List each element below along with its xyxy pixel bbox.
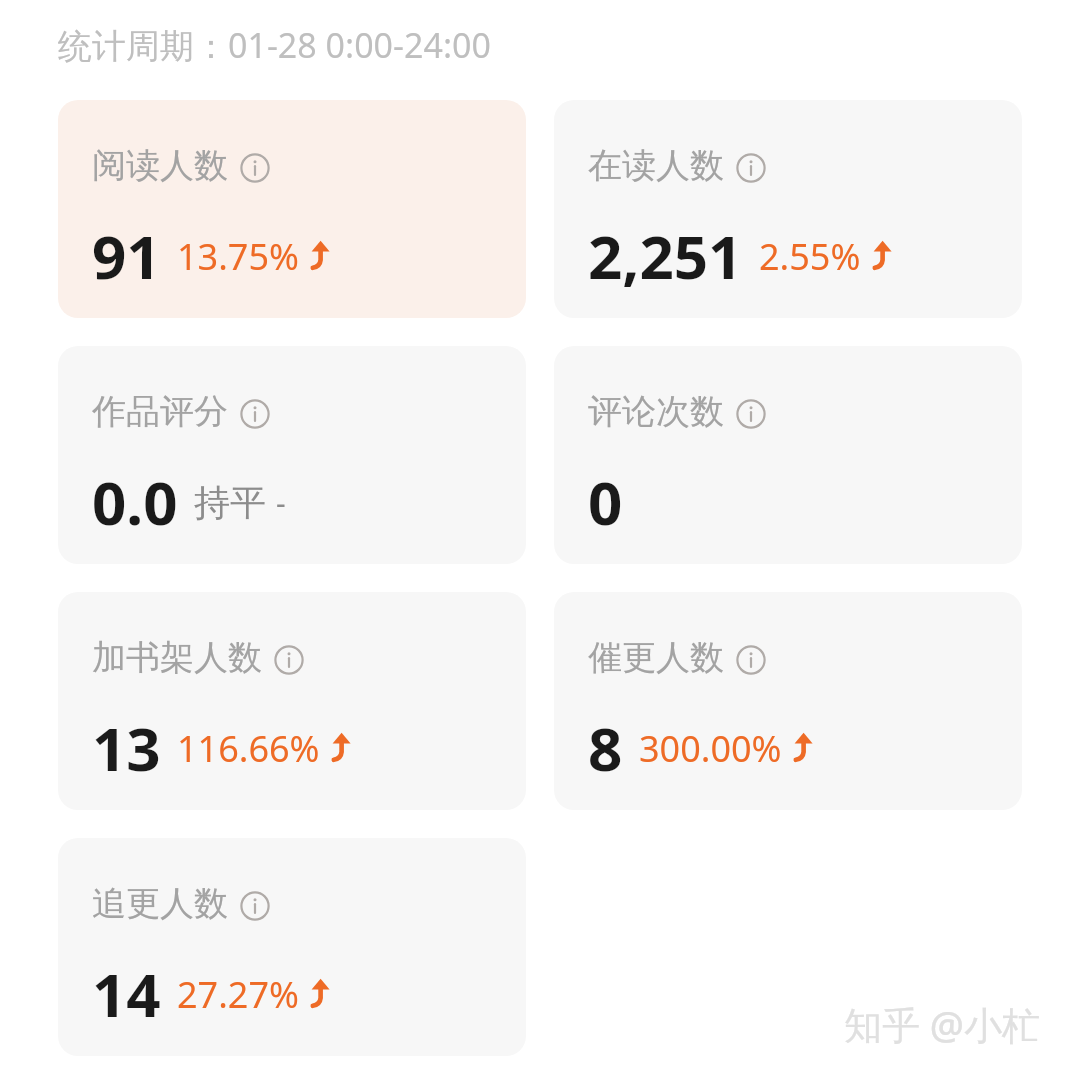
staticText: 13.75% <box>177 232 299 281</box>
other: 说明 <box>736 645 766 675</box>
other: 说明 <box>736 399 766 429</box>
staticText: 300.00% <box>639 724 782 773</box>
other: 说明 <box>274 645 304 675</box>
staticText: 116.66% <box>177 724 320 773</box>
staticText: 27.27% <box>177 970 299 1019</box>
staticText: 阅读人数 <box>92 144 228 187</box>
button[interactable]: 评论次数 <box>554 346 1022 564</box>
staticText: 催更人数 <box>588 636 724 679</box>
other: 说明 <box>240 891 270 921</box>
staticText: 评论次数 <box>588 390 724 433</box>
staticText: 知乎 @小杧 <box>843 998 1040 1050</box>
staticText: 在读人数 <box>588 144 724 187</box>
button[interactable]: 加书架人数 <box>58 592 526 810</box>
staticText: 13 <box>92 707 161 789</box>
staticText: 持平 <box>194 480 266 525</box>
staticText: 2.55% <box>759 232 861 281</box>
staticText: 14 <box>92 953 161 1035</box>
button[interactable]: 阅读人数 <box>58 100 526 318</box>
other: 说明 <box>240 153 270 183</box>
other: 说明 <box>240 399 270 429</box>
staticText: - <box>276 482 286 523</box>
button[interactable]: 追更人数 <box>58 838 526 1056</box>
staticText: 加书架人数 <box>92 636 262 679</box>
staticText: 0.0 <box>92 461 178 543</box>
staticText: 91 <box>92 215 161 297</box>
button[interactable]: 催更人数 <box>554 592 1022 810</box>
other: 说明 <box>736 153 766 183</box>
staticText: 统计周期：01-28 0:00-24:00 <box>58 22 491 68</box>
button[interactable]: 作品评分 <box>58 346 526 564</box>
staticText: 追更人数 <box>92 882 228 925</box>
staticText: 8 <box>588 707 623 789</box>
button[interactable]: 在读人数 <box>554 100 1022 318</box>
staticText: 2,251 <box>588 215 743 297</box>
staticText: 0 <box>588 461 623 543</box>
staticText: 作品评分 <box>92 390 228 433</box>
